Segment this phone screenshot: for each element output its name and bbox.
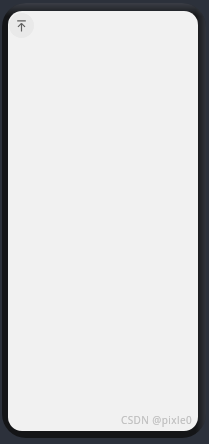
staticText: CSDN @pixle0: [121, 413, 193, 427]
button[interactable]: Scroll to top: [9, 13, 34, 38]
